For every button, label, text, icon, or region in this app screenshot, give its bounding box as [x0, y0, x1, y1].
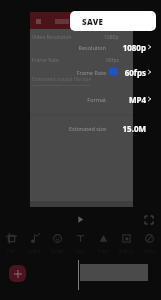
button[interactable]: Edit: [0, 233, 23, 257]
staticText: 1080p: [106, 42, 146, 53]
staticText: 60fps: [106, 57, 119, 64]
button[interactable]: Frame Rate: [0, 64, 161, 80]
button[interactable]: Add clip: [9, 265, 26, 282]
button[interactable]: Sticker: [46, 233, 69, 257]
button[interactable]: SAVE: [70, 11, 156, 31]
staticText: Estimated output file size: [32, 76, 92, 83]
staticText: Resolution: [46, 44, 106, 51]
staticText: MP4: [106, 94, 146, 105]
button[interactable]: Format: [0, 91, 161, 107]
button[interactable]: Text: [69, 233, 92, 257]
staticText: SAVE: [82, 16, 104, 27]
staticText: 15.0M: [106, 123, 146, 134]
button[interactable]: Play: [74, 213, 87, 226]
button[interactable]: Audio: [23, 233, 46, 257]
staticText: Video Resolution: [32, 34, 72, 41]
button[interactable]: Filter: [92, 233, 115, 257]
staticText: Estimated size: [46, 125, 106, 132]
button[interactable]: Resolution: [0, 39, 161, 55]
staticText: Frame Rate: [46, 69, 106, 76]
staticText: 60fps: [106, 67, 146, 78]
staticText: 1080p: [104, 34, 119, 41]
button[interactable]: Overlay: [115, 233, 138, 257]
button[interactable]: Ratio: [138, 233, 161, 257]
button[interactable]: Estimated size: [0, 120, 161, 136]
staticText: Frame Rate: [32, 57, 59, 64]
button[interactable]: Fullscreen: [142, 213, 155, 226]
staticText: Format: [46, 96, 106, 103]
